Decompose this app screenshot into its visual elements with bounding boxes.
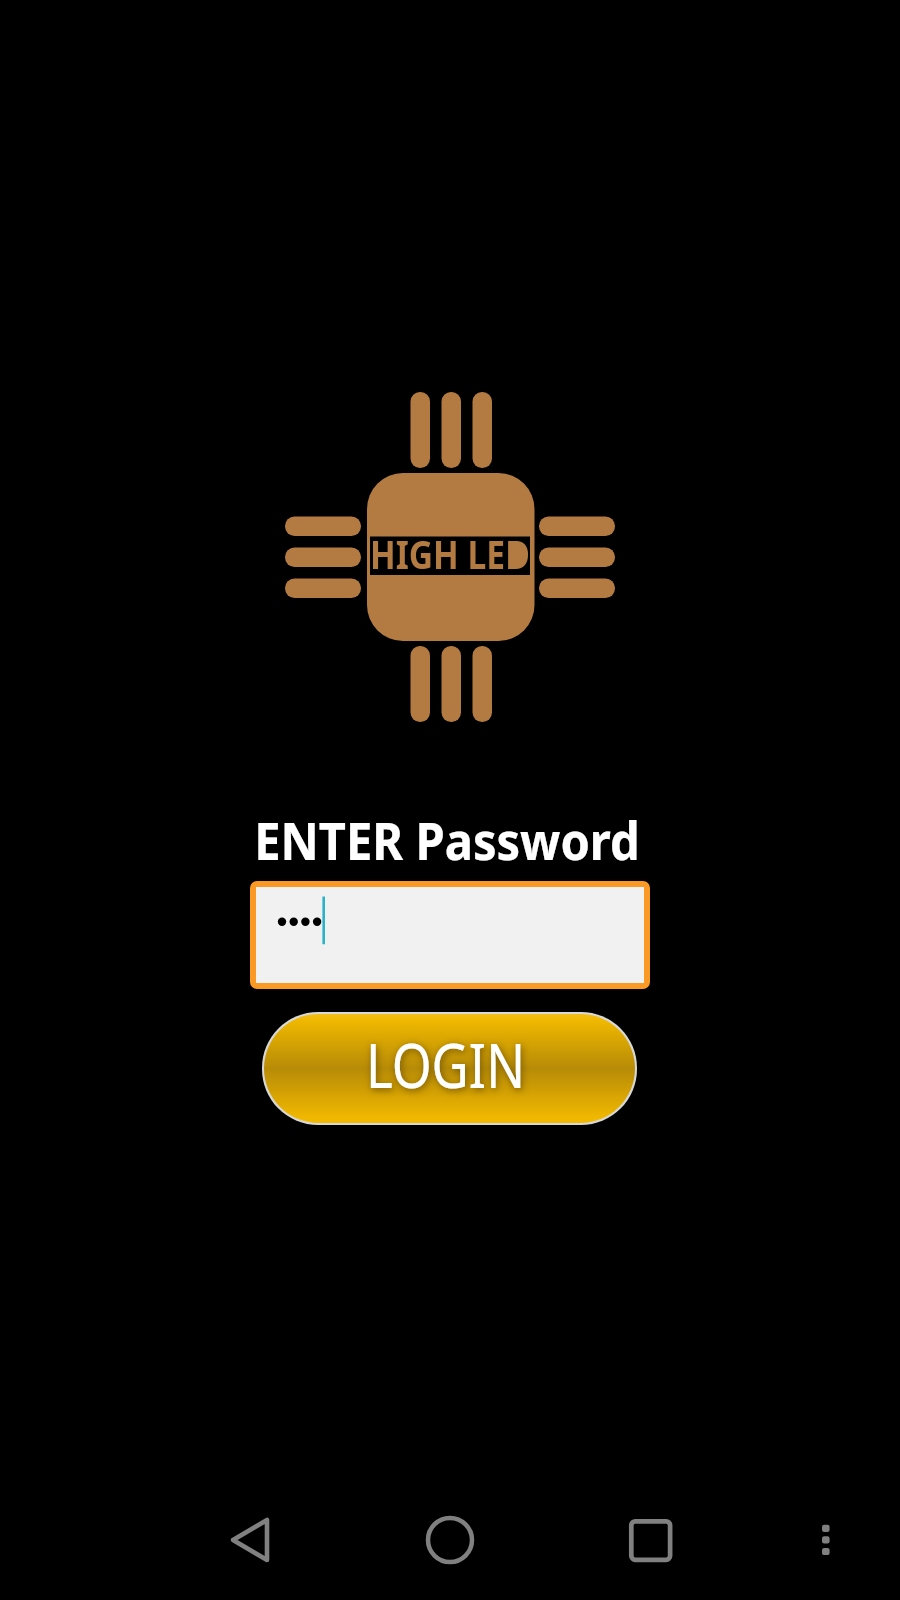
- button[interactable]: LOGIN: [264, 1014, 635, 1123]
- staticText: ENTER Password: [254, 804, 640, 875]
- staticText: HIGH LED: [370, 526, 530, 580]
- button[interactable]: More options: [790, 1495, 860, 1587]
- button[interactable]: [256, 887, 644, 983]
- staticText: LOGIN: [366, 1022, 525, 1106]
- button[interactable]: Home: [404, 1495, 496, 1587]
- button[interactable]: Back: [204, 1495, 296, 1587]
- button[interactable]: Recent apps: [604, 1495, 696, 1587]
